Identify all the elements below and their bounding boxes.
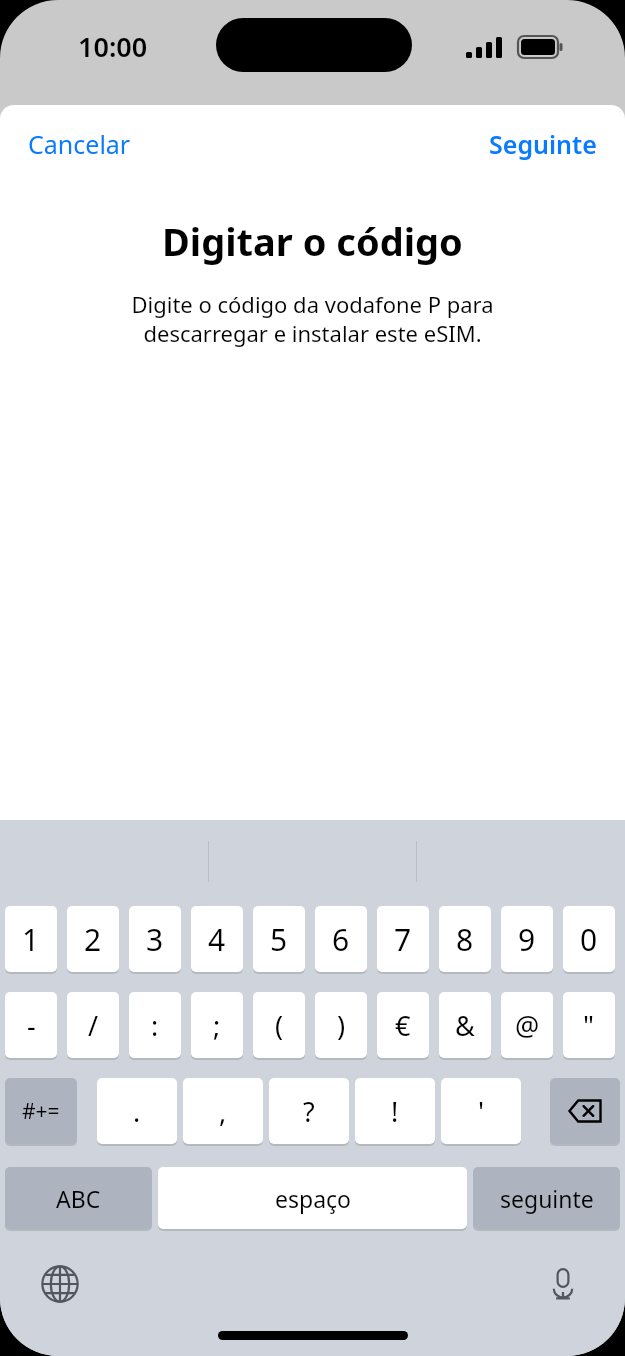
staticText: ? xyxy=(303,1093,315,1130)
staticText: 6 xyxy=(332,919,350,960)
button[interactable]: 0 xyxy=(563,906,615,972)
button[interactable]: 7 xyxy=(377,906,429,972)
staticText: @ xyxy=(515,1007,540,1044)
staticText: 8 xyxy=(456,919,474,960)
button[interactable]: #+= xyxy=(5,1078,77,1144)
staticText: ) xyxy=(337,1007,346,1044)
staticText: Seguinte xyxy=(489,127,597,161)
button[interactable]: 1 xyxy=(5,906,57,972)
staticText: 7 xyxy=(394,919,412,960)
staticText: " xyxy=(583,1007,595,1044)
staticText: 1 xyxy=(22,919,40,960)
button[interactable]: 3 xyxy=(129,906,181,972)
button[interactable]: & xyxy=(439,992,491,1058)
staticText: 0 xyxy=(580,919,598,960)
button[interactable]: 9 xyxy=(501,906,553,972)
staticText: 3 xyxy=(146,919,164,960)
staticText: seguinte xyxy=(500,1183,594,1214)
staticText: Cancelar xyxy=(28,127,131,161)
staticText: / xyxy=(88,1007,99,1044)
button[interactable]: : xyxy=(129,992,181,1058)
button[interactable]: Backspace xyxy=(550,1078,620,1144)
staticText: Digitar o código xyxy=(162,215,463,267)
staticText: #+= xyxy=(22,1097,60,1126)
button[interactable]: @ xyxy=(501,992,553,1058)
button[interactable]: € xyxy=(377,992,429,1058)
button[interactable]: seguinte xyxy=(473,1167,620,1229)
button[interactable]: ! xyxy=(355,1078,435,1144)
button[interactable]: 5 xyxy=(253,906,305,972)
staticText: 5 xyxy=(270,919,288,960)
staticText: - xyxy=(27,1007,36,1044)
staticText: 10:00 xyxy=(78,28,148,65)
staticText: ! xyxy=(391,1093,399,1130)
button[interactable]: espaço xyxy=(158,1167,467,1229)
button[interactable]: . xyxy=(97,1078,177,1144)
button[interactable]: ) xyxy=(315,992,367,1058)
staticText: Digite o código da vodafone P para desca… xyxy=(92,289,533,348)
staticText: , xyxy=(219,1093,227,1130)
staticText: ABC xyxy=(56,1183,101,1214)
staticText: 9 xyxy=(518,919,536,960)
button[interactable]: " xyxy=(563,992,615,1058)
staticText: . xyxy=(133,1093,141,1130)
button[interactable]: Cancelar xyxy=(14,119,145,169)
button[interactable]: Seguinte xyxy=(475,119,611,169)
button[interactable]: , xyxy=(183,1078,263,1144)
button[interactable]: Change keyboard language xyxy=(34,1258,86,1310)
staticText: 4 xyxy=(208,919,226,960)
button[interactable]: ; xyxy=(191,992,243,1058)
button[interactable]: 2 xyxy=(67,906,119,972)
button[interactable]: 6 xyxy=(315,906,367,972)
button[interactable]: Dictation xyxy=(537,1258,589,1310)
staticText: & xyxy=(455,1007,475,1044)
button[interactable]: 4 xyxy=(191,906,243,972)
button[interactable]: ( xyxy=(253,992,305,1058)
staticText: ( xyxy=(275,1007,284,1044)
staticText: € xyxy=(395,1007,411,1044)
staticText: 2 xyxy=(84,919,102,960)
button[interactable]: ? xyxy=(269,1078,349,1144)
staticText: ; xyxy=(213,1007,221,1044)
button[interactable]: 8 xyxy=(439,906,491,972)
staticText: espaço xyxy=(275,1183,351,1214)
button[interactable]: - xyxy=(5,992,57,1058)
staticText: : xyxy=(151,1007,159,1044)
button[interactable]: / xyxy=(67,992,119,1058)
button[interactable]: ABC xyxy=(5,1167,152,1229)
button[interactable]: ' xyxy=(441,1078,521,1144)
staticText: ' xyxy=(478,1093,485,1130)
